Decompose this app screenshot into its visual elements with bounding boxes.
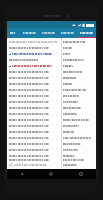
button[interactable] [63,147,95,153]
button[interactable] [63,129,95,135]
button[interactable]: Home [36,169,66,179]
button[interactable] [8,147,60,153]
button[interactable] [63,39,95,45]
button[interactable] [63,93,95,99]
button[interactable] [8,93,60,99]
button[interactable] [8,87,60,93]
button[interactable] [8,75,60,81]
button[interactable] [63,69,95,75]
button[interactable] [8,51,60,57]
button[interactable] [8,153,60,159]
button[interactable] [8,105,60,111]
button[interactable] [8,129,60,135]
button[interactable]: Search [7,161,96,169]
button[interactable] [63,99,95,105]
button[interactable] [8,111,60,117]
button[interactable] [63,123,95,129]
button[interactable] [63,63,95,69]
button[interactable] [8,117,60,123]
button[interactable] [63,159,95,161]
button[interactable] [63,117,95,123]
button[interactable] [8,45,60,51]
button[interactable] [8,159,60,161]
button[interactable] [8,69,60,75]
button[interactable] [8,39,60,45]
other: Search [9,163,13,167]
button[interactable] [63,81,95,87]
button[interactable] [63,111,95,117]
button[interactable] [63,135,95,141]
button[interactable]: Recent apps [66,169,96,179]
button[interactable] [8,123,60,129]
button[interactable] [58,28,77,37]
button[interactable] [39,28,58,37]
button[interactable] [77,28,96,37]
button[interactable] [63,105,95,111]
button[interactable]: Back [7,169,36,179]
button[interactable] [8,63,60,69]
button[interactable] [63,153,95,159]
button[interactable] [63,57,95,63]
button[interactable] [8,57,60,63]
button[interactable] [63,45,95,51]
button[interactable] [8,81,60,87]
button[interactable] [20,28,39,37]
button[interactable] [63,141,95,147]
button[interactable] [63,87,95,93]
button[interactable] [63,75,95,81]
button[interactable] [8,141,60,147]
button[interactable] [7,28,20,37]
button[interactable] [8,99,60,105]
button[interactable] [63,51,95,57]
button[interactable] [8,135,60,141]
